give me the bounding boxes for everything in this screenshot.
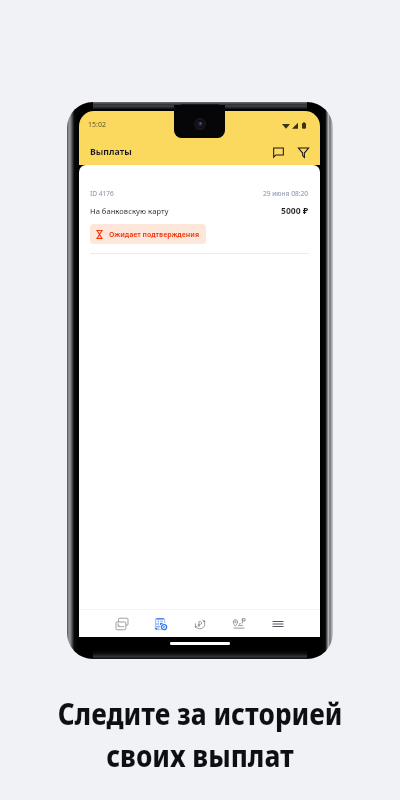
button[interactable]: Cards xyxy=(102,610,141,637)
button[interactable]: Menu xyxy=(258,610,297,637)
button[interactable]: Chat xyxy=(270,144,286,160)
staticText: ID 4176 xyxy=(90,189,114,198)
staticText: своих выплат xyxy=(106,734,294,776)
button[interactable]: Filter xyxy=(295,144,311,160)
staticText: Следите за историей xyxy=(57,692,342,734)
button[interactable]: ID 4176 xyxy=(79,165,320,254)
button[interactable]: Finance xyxy=(180,610,219,637)
staticText: 15:02 xyxy=(88,120,106,130)
staticText: 29 июня 08:20 xyxy=(263,189,309,198)
staticText: На банковскую карту xyxy=(90,206,169,216)
button[interactable]: Orders xyxy=(219,610,258,637)
staticText: Выплаты xyxy=(90,146,132,158)
staticText: 5000 ₽ xyxy=(281,205,309,217)
staticText: Ожидает подтверждения xyxy=(109,230,200,239)
button[interactable]: Payouts xyxy=(141,610,180,637)
